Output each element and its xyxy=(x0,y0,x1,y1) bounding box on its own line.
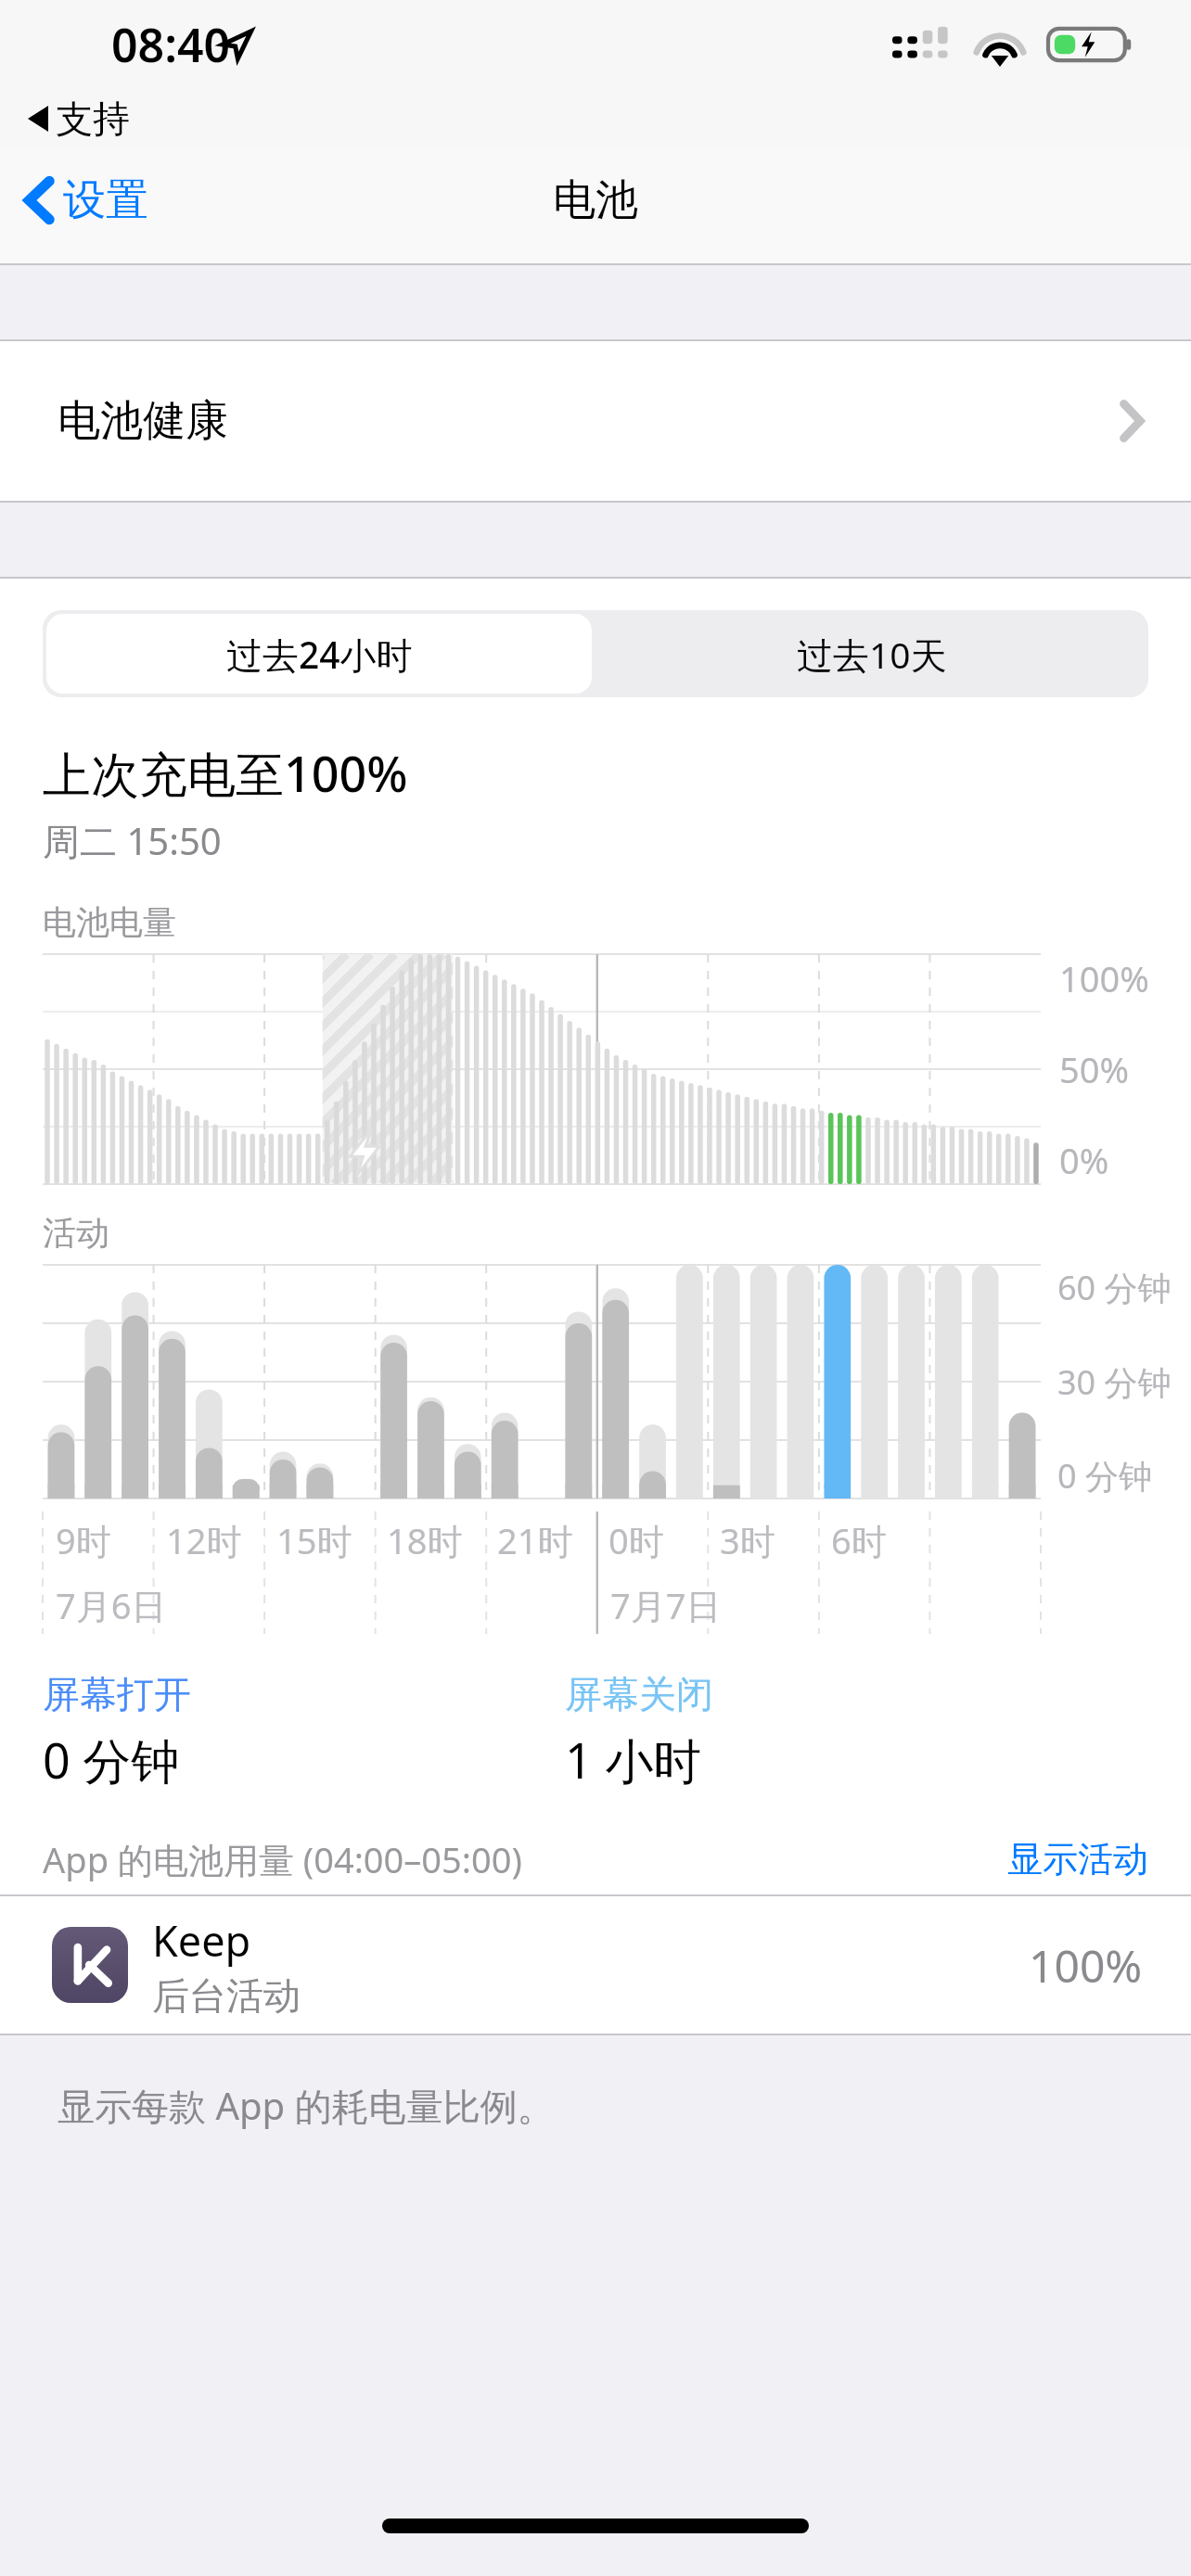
button[interactable]: 过去10天 xyxy=(595,610,1148,697)
staticText: 7月7日 xyxy=(610,1581,722,1629)
staticText: 活动 xyxy=(43,1212,109,1254)
staticText: 0 分钟 xyxy=(1057,1453,1152,1498)
staticText: 过去10天 xyxy=(797,630,947,679)
staticText: 电池电量 xyxy=(43,901,176,943)
staticText: 50% xyxy=(1059,1045,1130,1093)
staticText: 0 分钟 xyxy=(43,1727,180,1792)
staticText: 100% xyxy=(1059,954,1149,1002)
staticText: 9时 xyxy=(56,1516,111,1564)
staticText: 后台活动 xyxy=(152,1972,301,2019)
staticText: 显示活动 xyxy=(1007,1837,1148,1881)
staticText: 100% xyxy=(1029,1935,1143,1996)
button[interactable]: 过去24小时 xyxy=(46,614,592,694)
staticText: 0% xyxy=(1059,1136,1109,1184)
staticText: App 的电池用量 (04:00–05:00) xyxy=(43,1835,522,1883)
staticText: 15时 xyxy=(276,1516,352,1564)
staticText: 12时 xyxy=(166,1516,242,1564)
button[interactable]: 设置 xyxy=(24,173,148,227)
button[interactable]: Keep xyxy=(0,1896,1191,2034)
staticText: 屏幕打开 xyxy=(43,1671,191,1717)
staticText: 7月6日 xyxy=(56,1581,167,1629)
button[interactable]: 支持 xyxy=(0,89,1191,148)
staticText: 支持 xyxy=(56,96,130,142)
staticText: 设置 xyxy=(63,173,148,227)
staticText: 屏幕关闭 xyxy=(565,1671,713,1717)
staticText: 21时 xyxy=(497,1516,573,1564)
button[interactable]: 显示活动 xyxy=(1007,1837,1148,1881)
staticText: Keep xyxy=(152,1912,251,1969)
staticText: 周二 15:50 xyxy=(43,815,222,866)
staticText: 上次充电至100% xyxy=(43,740,408,806)
staticText: 过去24小时 xyxy=(226,630,413,679)
staticText: 3时 xyxy=(720,1516,775,1564)
button[interactable]: 电池健康 xyxy=(0,341,1191,501)
staticText: 08:40 xyxy=(111,13,231,76)
staticText: 30 分钟 xyxy=(1057,1359,1172,1405)
staticText: 电池健康 xyxy=(58,394,228,448)
staticText: 6时 xyxy=(831,1516,887,1564)
staticText: 60 分钟 xyxy=(1057,1265,1172,1310)
staticText: 显示每款 App 的耗电量比例。 xyxy=(58,2080,555,2131)
staticText: 18时 xyxy=(387,1516,463,1564)
staticText: 1 小时 xyxy=(565,1727,702,1792)
staticText: 0时 xyxy=(608,1516,664,1564)
staticText: 电池 xyxy=(553,173,638,227)
